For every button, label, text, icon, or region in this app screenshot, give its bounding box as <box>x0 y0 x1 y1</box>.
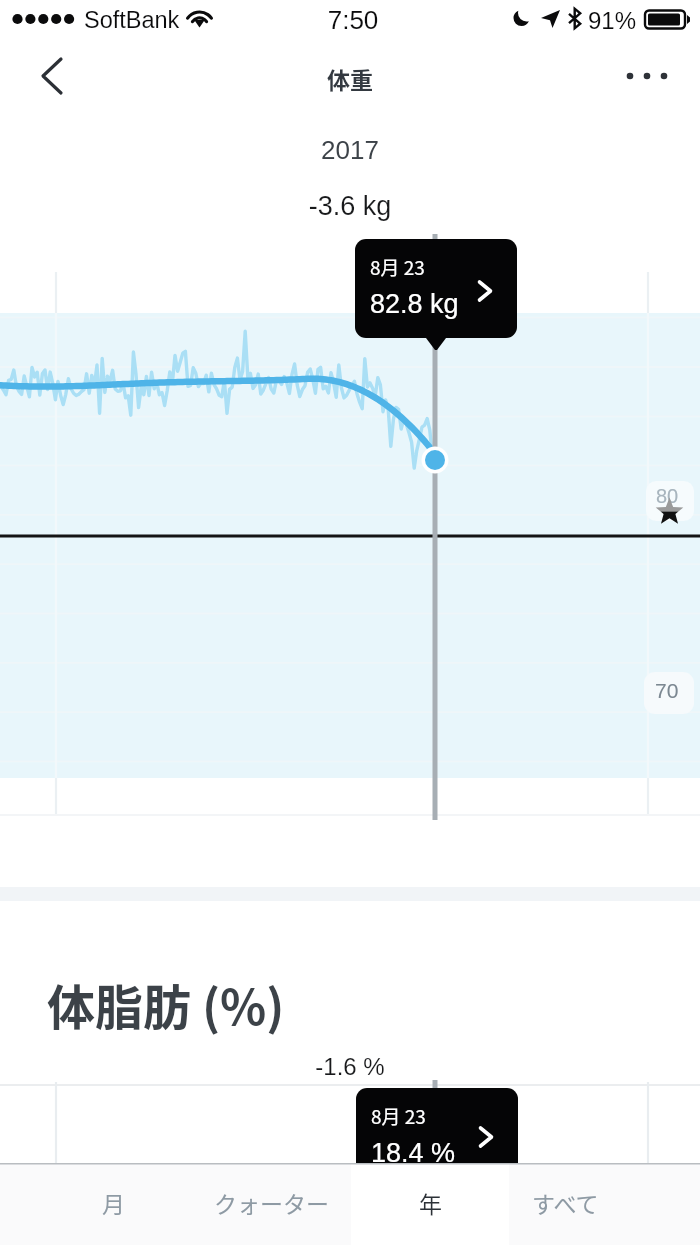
button[interactable]: Back <box>22 45 84 107</box>
button[interactable]: すべて <box>509 1163 621 1245</box>
staticText: 91% <box>588 7 637 34</box>
staticText: 82.8 kg <box>370 289 459 319</box>
staticText: 体脂肪 (%) <box>47 969 285 1039</box>
staticText: 8月 23 <box>371 1102 426 1130</box>
button[interactable]: 8月 23 <box>356 1088 518 1182</box>
staticText: -1.6 % <box>0 1053 700 1080</box>
staticText: すべて <box>532 1186 599 1219</box>
button[interactable]: 8月 23 <box>355 239 517 338</box>
staticText: 体重 <box>0 62 700 95</box>
button[interactable]: More options <box>616 45 678 107</box>
staticText: 80 <box>656 485 679 507</box>
staticText: クォーター <box>214 1186 329 1219</box>
staticText: 2017 <box>0 135 700 164</box>
staticText: 18.4 % <box>371 1138 456 1168</box>
button[interactable]: 年 <box>351 1163 509 1245</box>
staticText: -3.6 kg <box>0 191 700 221</box>
button[interactable]: クォーター <box>192 1163 350 1245</box>
staticText: 70 <box>655 679 679 702</box>
staticText: 8月 23 <box>370 253 425 281</box>
staticText: 7:50 <box>3 5 700 34</box>
staticText: 月 <box>102 1186 125 1219</box>
staticText: SoftBank <box>84 7 180 33</box>
staticText: 年 <box>419 1186 442 1219</box>
button[interactable]: 月 <box>34 1163 192 1245</box>
